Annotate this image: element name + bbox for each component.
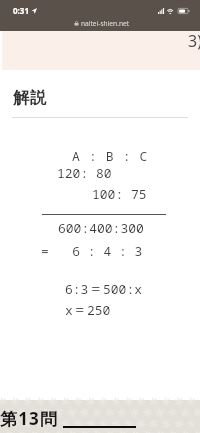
staticText: 3) — [188, 30, 200, 52]
staticText: 120: 80 — [57, 164, 112, 182]
staticText: 100: 75 — [92, 185, 147, 203]
staticText: 第13問 — [0, 407, 59, 430]
staticText: 解説 — [13, 88, 48, 108]
button[interactable]: naitei-shien.net — [0, 16, 200, 31]
staticText: x — [65, 301, 73, 319]
staticText: 500:x — [103, 280, 143, 298]
staticText: 6:3 — [65, 280, 89, 298]
staticText: = 6 : 4 : 3 — [41, 242, 143, 260]
staticText: 0:31 — [13, 5, 29, 16]
staticText: ＝ — [89, 280, 103, 298]
staticText: 600:400:300 — [58, 219, 144, 237]
button[interactable]: 第13問 — [0, 400, 200, 433]
staticText: ＝ — [73, 301, 87, 319]
staticText: A : B : C — [72, 147, 149, 165]
staticText: 250 — [87, 301, 111, 319]
staticText: naitei-shien.net — [81, 19, 130, 28]
